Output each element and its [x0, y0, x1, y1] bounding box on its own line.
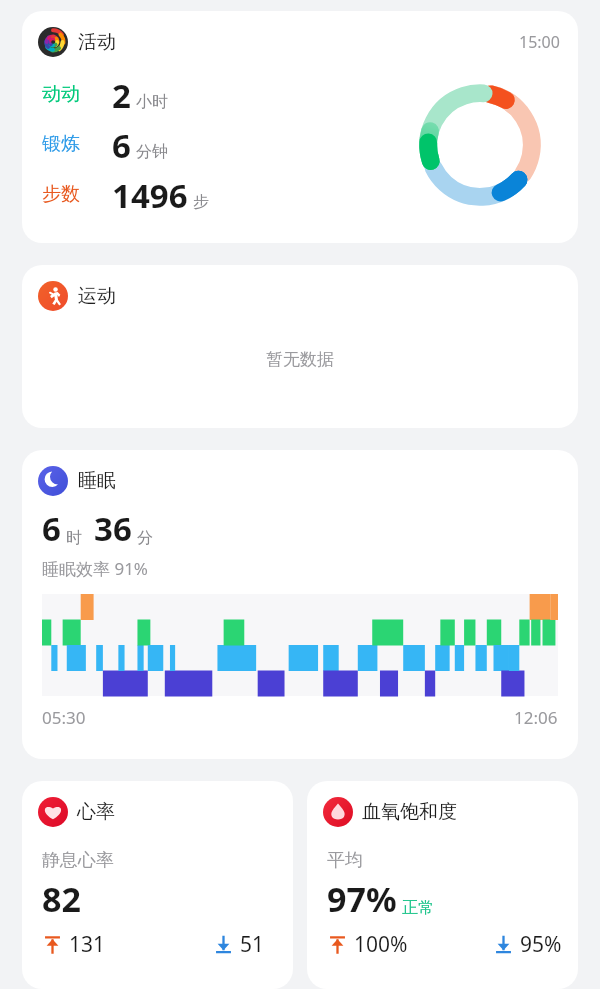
button[interactable]: 睡眠 — [22, 450, 578, 759]
staticText: 心率 — [77, 800, 115, 824]
staticText: 血氧饱和度 — [362, 800, 457, 824]
staticText: 分钟 — [136, 142, 168, 162]
staticText: 小时 — [136, 92, 168, 112]
staticText: 97% — [327, 876, 397, 922]
staticText: 6 — [112, 123, 131, 165]
staticText: 12:06 — [514, 706, 558, 729]
staticText: 82 — [42, 876, 81, 922]
staticText: 95% — [520, 930, 562, 959]
staticText: 步数 — [42, 182, 80, 206]
staticText: 36 — [94, 506, 132, 551]
staticText: 活动 — [78, 30, 116, 54]
staticText: 时 — [66, 528, 82, 548]
staticText: 睡眠效率 91% — [42, 557, 148, 580]
staticText: 100% — [354, 930, 408, 959]
staticText: 分 — [137, 528, 153, 548]
staticText: 睡眠 — [78, 469, 116, 493]
staticText: 05:30 — [42, 706, 86, 729]
staticText: 锻炼 — [42, 132, 80, 156]
staticText: 运动 — [78, 284, 116, 308]
staticText: 131 — [69, 930, 106, 959]
staticText: 正常 — [402, 898, 434, 918]
staticText: 51 — [240, 930, 265, 959]
staticText: 静息心率 — [42, 849, 114, 872]
button[interactable]: 血氧饱和度 — [307, 781, 578, 989]
button[interactable]: 运动 — [22, 265, 578, 428]
staticText: 6 — [42, 506, 61, 551]
staticText: 1496 — [112, 173, 188, 215]
staticText: 15:00 — [519, 31, 560, 53]
button[interactable]: 活动 — [22, 11, 578, 243]
staticText: 暂无数据 — [266, 349, 334, 370]
staticText: 2 — [112, 73, 131, 115]
staticText: 步 — [193, 192, 209, 212]
staticText: 平均 — [327, 849, 363, 872]
button[interactable]: 心率 — [22, 781, 293, 989]
staticText: 动动 — [42, 82, 80, 106]
